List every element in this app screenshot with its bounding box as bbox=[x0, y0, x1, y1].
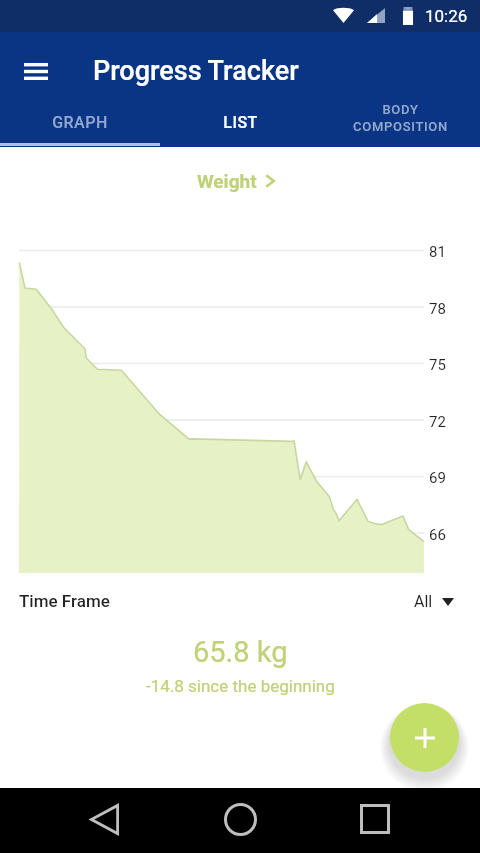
staticText: 81 bbox=[429, 243, 446, 261]
button[interactable]: Open navigation drawer bbox=[11, 46, 61, 96]
button[interactable]: Weight bbox=[187, 164, 293, 198]
staticText: GRAPH bbox=[52, 113, 108, 132]
staticText: 65.8 kg bbox=[193, 635, 288, 669]
button[interactable]: All bbox=[410, 588, 458, 615]
staticText: BODY COMPOSITION bbox=[353, 102, 448, 135]
button[interactable]: Recent apps bbox=[345, 789, 405, 849]
staticText: 66 bbox=[429, 526, 446, 544]
staticText: 78 bbox=[429, 300, 446, 318]
staticText: 69 bbox=[429, 469, 446, 487]
staticText: All bbox=[414, 592, 433, 611]
button[interactable]: GRAPH bbox=[0, 99, 160, 147]
staticText: 10:26 bbox=[425, 6, 468, 26]
staticText: LIST bbox=[223, 113, 258, 132]
staticText: 75 bbox=[429, 356, 446, 374]
button[interactable]: Back bbox=[74, 789, 134, 849]
button[interactable]: Add entry bbox=[390, 703, 459, 772]
button[interactable]: Home bbox=[210, 789, 270, 849]
button[interactable]: BODY COMPOSITION bbox=[320, 99, 480, 147]
staticText: Time Frame bbox=[19, 591, 110, 611]
staticText: Progress Tracker bbox=[93, 55, 299, 87]
staticText: 72 bbox=[429, 413, 446, 431]
button[interactable]: LIST bbox=[160, 99, 320, 147]
staticText: Weight bbox=[197, 170, 257, 192]
staticText: -14.8 since the beginning bbox=[146, 676, 335, 696]
